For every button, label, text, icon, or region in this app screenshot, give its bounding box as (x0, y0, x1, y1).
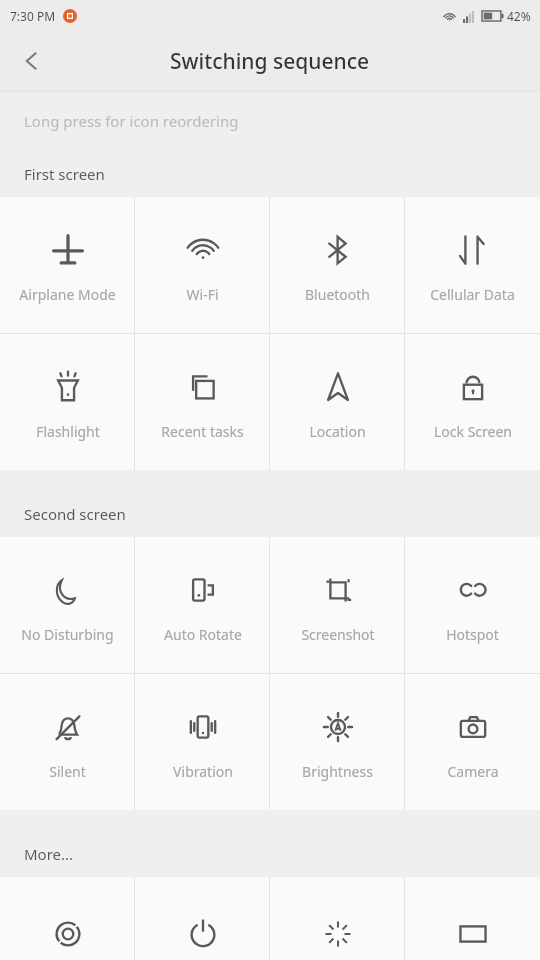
staticText: Cellular Data (430, 285, 515, 304)
staticText: 42% (507, 8, 531, 24)
staticText: Hotspot (446, 625, 499, 644)
staticText: Bluetooth (305, 285, 370, 304)
staticText: Location (309, 422, 366, 441)
staticText: No Disturbing (21, 625, 114, 644)
staticText: Wi-Fi (186, 285, 219, 304)
staticText: First screen (24, 164, 105, 184)
staticText: Camera (447, 762, 499, 781)
staticText: Brightness (302, 762, 373, 781)
button[interactable]: Location (270, 334, 405, 470)
button[interactable]: Auto Rotate (135, 537, 270, 673)
button[interactable]: Recent tasks (135, 334, 270, 470)
staticText: Lock Screen (434, 422, 512, 441)
button[interactable]: Brightness (270, 674, 405, 810)
staticText: Long press for icon reordering (24, 111, 239, 131)
button[interactable]: Vibration (135, 674, 270, 810)
button[interactable]: Bluetooth (270, 197, 405, 333)
staticText: Switching sequence (170, 47, 370, 76)
button[interactable]: Sync (0, 877, 135, 960)
button[interactable]: Hotspot (405, 537, 540, 673)
staticText: Silent (49, 762, 86, 781)
button[interactable]: Airplane Mode (0, 197, 135, 333)
button[interactable]: Cellular Data (405, 197, 540, 333)
staticText: Auto Rotate (164, 625, 242, 644)
button[interactable]: VPN (405, 877, 540, 960)
staticText: Flashlight (36, 422, 100, 441)
button[interactable]: Wi-Fi (135, 197, 270, 333)
staticText: 7:30 PM (10, 8, 56, 24)
staticText: Vibration (173, 762, 233, 781)
staticText: Recent tasks (161, 422, 244, 441)
button[interactable]: Lock Screen (405, 334, 540, 470)
staticText: More... (24, 844, 74, 864)
button[interactable]: Screenshot (270, 537, 405, 673)
button[interactable]: Loading (270, 877, 405, 960)
button[interactable]: Flashlight (0, 334, 135, 470)
button[interactable]: Silent (0, 674, 135, 810)
staticText: Screenshot (301, 625, 375, 644)
button[interactable]: No Disturbing (0, 537, 135, 673)
button[interactable]: Power (135, 877, 270, 960)
staticText: Airplane Mode (19, 285, 116, 304)
staticText: Second screen (24, 504, 126, 524)
button[interactable]: Camera (405, 674, 540, 810)
button[interactable]: Back (0, 31, 64, 91)
